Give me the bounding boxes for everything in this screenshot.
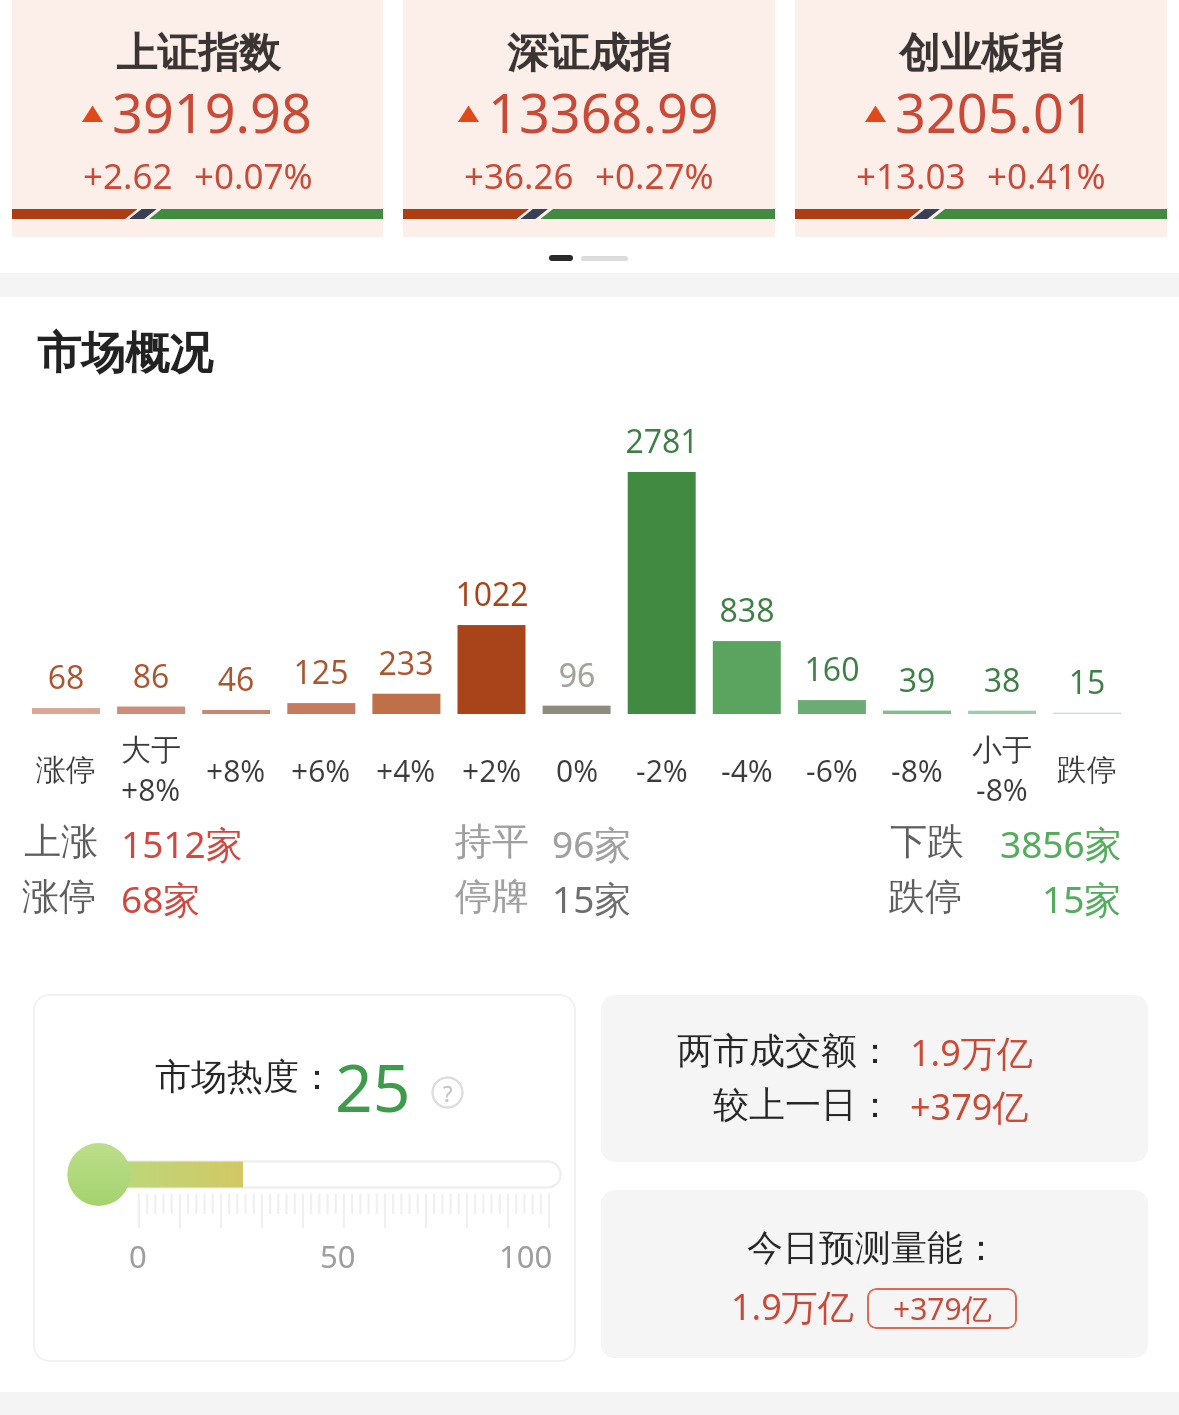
- staticText: 3919.98: [112, 75, 312, 149]
- staticText: -4%: [721, 750, 773, 791]
- staticText: 两市成交额：: [677, 1028, 893, 1073]
- staticText: 1.9万亿: [731, 1282, 854, 1331]
- button[interactable]: 深证成指: [403, 0, 775, 237]
- staticText: +4%: [376, 750, 436, 791]
- staticText: 125: [261, 650, 381, 694]
- staticText: 838: [687, 588, 807, 632]
- staticText: 停牌: [455, 873, 529, 920]
- staticText: +13.03: [856, 152, 966, 200]
- staticText: +0.27%: [595, 152, 714, 200]
- staticText: 上证指数: [116, 28, 280, 80]
- staticText: 38: [942, 658, 1062, 702]
- staticText: 3856家: [1000, 818, 1122, 869]
- staticText: 1022: [432, 572, 552, 616]
- staticText: 跌停: [1057, 751, 1117, 789]
- staticText: 持平: [455, 818, 529, 865]
- staticText: +6%: [291, 750, 351, 791]
- staticText: +8%: [206, 750, 266, 791]
- staticText: 2781: [602, 419, 722, 463]
- staticText: 涨停: [36, 751, 96, 789]
- staticText: 创业板指: [899, 28, 1063, 80]
- staticText: 15家: [1042, 873, 1122, 924]
- staticText: 39: [857, 658, 977, 702]
- staticText: 跌停: [888, 873, 962, 920]
- staticText: 68家: [121, 873, 201, 924]
- staticText: +8%: [121, 769, 181, 810]
- staticText: 1.9万亿: [910, 1028, 1033, 1077]
- button[interactable]: 今日预测量能：: [601, 1190, 1148, 1358]
- staticText: 96家: [552, 818, 632, 869]
- staticText: 1512家: [121, 818, 243, 869]
- staticText: 13368.99: [488, 75, 719, 149]
- staticText: 15: [1027, 660, 1147, 704]
- staticText: +36.26: [464, 152, 574, 200]
- staticText: 深证成指: [507, 28, 671, 80]
- staticText: 市场热度：: [155, 1054, 335, 1099]
- button[interactable]: 市场热度：: [33, 994, 576, 1362]
- staticText: 86: [91, 654, 211, 698]
- staticText: 上涨: [24, 818, 98, 865]
- staticText: ?: [443, 1078, 453, 1108]
- staticText: 100: [499, 1235, 553, 1277]
- staticText: +2.62: [83, 152, 173, 200]
- button[interactable]: 创业板指: [795, 0, 1167, 237]
- staticText: 涨停: [22, 873, 96, 920]
- staticText: 今日预测量能：: [747, 1225, 999, 1270]
- staticText: +0.07%: [194, 152, 313, 200]
- staticText: 46: [176, 657, 296, 701]
- staticText: 小于: [972, 731, 1032, 769]
- staticText: 3205.01: [895, 75, 1095, 149]
- staticText: -8%: [976, 769, 1028, 810]
- staticText: 25: [335, 1041, 411, 1131]
- button[interactable]: 两市成交额：: [601, 995, 1148, 1162]
- staticText: +379亿: [910, 1082, 1029, 1131]
- staticText: 大于: [121, 731, 181, 769]
- staticText: 15家: [552, 873, 632, 924]
- staticText: 233: [346, 641, 466, 685]
- staticText: 160: [772, 647, 892, 691]
- staticText: +379亿: [893, 1288, 992, 1329]
- staticText: -6%: [806, 750, 858, 791]
- staticText: 0%: [556, 750, 599, 791]
- staticText: -8%: [891, 750, 943, 791]
- staticText: 68: [6, 655, 126, 699]
- staticText: 市场概况: [37, 326, 213, 381]
- button[interactable]: 上证指数: [12, 0, 383, 237]
- staticText: 50: [320, 1235, 356, 1277]
- staticText: 0: [129, 1235, 147, 1277]
- staticText: 较上一日：: [713, 1082, 893, 1127]
- staticText: 下跌: [890, 818, 964, 865]
- staticText: +0.41%: [987, 152, 1106, 200]
- staticText: -2%: [636, 750, 688, 791]
- staticText: 96: [517, 653, 637, 697]
- button[interactable]: 第一页: [549, 255, 573, 261]
- button[interactable]: 第二页: [581, 256, 628, 261]
- button[interactable]: 市场热度说明: [431, 1076, 464, 1109]
- staticText: +2%: [462, 750, 522, 791]
